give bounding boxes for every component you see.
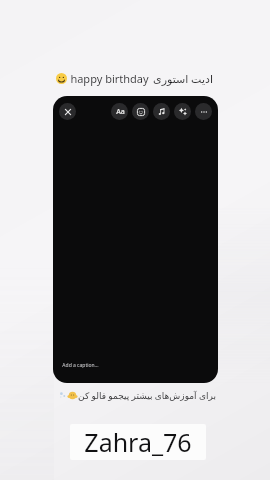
button[interactable]: Effects <box>174 103 191 120</box>
staticText: happy birthday <box>70 71 149 86</box>
staticText: ادیت استوری <box>153 71 213 86</box>
button[interactable]: Sticker <box>132 103 149 120</box>
button[interactable]: Close <box>59 103 76 120</box>
staticText: برای آموزش‌های بیشتر پیجمو فالو کن <box>78 389 216 401</box>
button[interactable]: Music <box>153 103 170 120</box>
button[interactable]: Add a caption... <box>62 362 99 369</box>
button[interactable]: Text <box>111 103 128 120</box>
staticText: Zahra_76 <box>84 425 192 459</box>
staticText: Add a caption... <box>62 362 99 369</box>
staticText: Aa <box>116 107 125 117</box>
button[interactable]: Zahra_76 <box>70 424 206 460</box>
button[interactable]: More options <box>195 103 212 120</box>
